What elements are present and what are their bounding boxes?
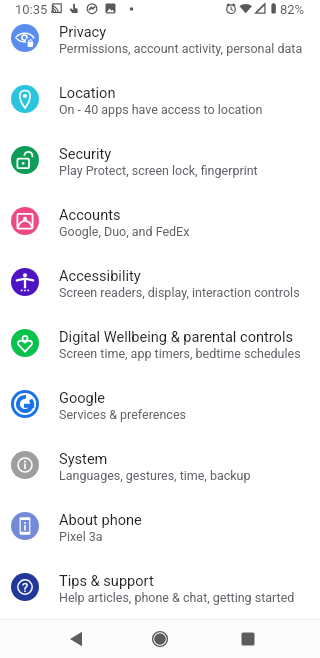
staticText: Screen time, app timers, bedtime schedul… xyxy=(59,346,301,361)
button[interactable]: System xyxy=(0,434,320,495)
staticText: System xyxy=(59,450,108,467)
button[interactable]: Location xyxy=(0,68,320,129)
staticText: Privacy xyxy=(59,23,107,40)
staticText: Services & preferences xyxy=(59,407,186,422)
button[interactable]: Accounts xyxy=(0,190,320,251)
staticText: Permissions, account activity, personal … xyxy=(59,41,303,56)
button[interactable]: Recent apps xyxy=(218,620,278,658)
staticText: Help articles, phone & chat, getting sta… xyxy=(59,590,295,605)
staticText: Play Protect, screen lock, fingerprint xyxy=(59,163,258,178)
staticText: Location xyxy=(59,84,116,101)
staticText: Pixel 3a xyxy=(59,529,103,544)
staticText: Languages, gestures, time, backup xyxy=(59,468,251,483)
button[interactable]: Accessibility xyxy=(0,251,320,312)
staticText: Screen readers, display, interaction con… xyxy=(59,285,300,300)
staticText: Tips & support xyxy=(59,572,154,589)
button[interactable]: Back xyxy=(50,620,110,658)
button[interactable]: ? xyxy=(0,556,320,617)
staticText: 82% xyxy=(280,2,305,17)
staticText: Google, Duo, and FedEx xyxy=(59,224,190,239)
staticText: Accessibility xyxy=(59,267,141,284)
staticText: ? xyxy=(22,580,29,595)
staticText: Security xyxy=(59,145,112,162)
staticText: About phone xyxy=(59,511,142,528)
button[interactable]: Digital Wellbeing & parental controls xyxy=(0,312,320,373)
staticText: Accounts xyxy=(59,206,121,223)
button[interactable]: Privacy xyxy=(0,7,320,68)
staticText: 10:35 xyxy=(15,2,48,17)
staticText: Digital Wellbeing & parental controls xyxy=(59,328,293,345)
button[interactable]: Google xyxy=(0,373,320,434)
button[interactable]: About phone xyxy=(0,495,320,556)
staticText: On - 40 apps have access to location xyxy=(59,102,263,117)
staticText: Google xyxy=(59,389,106,406)
button[interactable]: Home xyxy=(130,620,190,658)
button[interactable]: Security xyxy=(0,129,320,190)
